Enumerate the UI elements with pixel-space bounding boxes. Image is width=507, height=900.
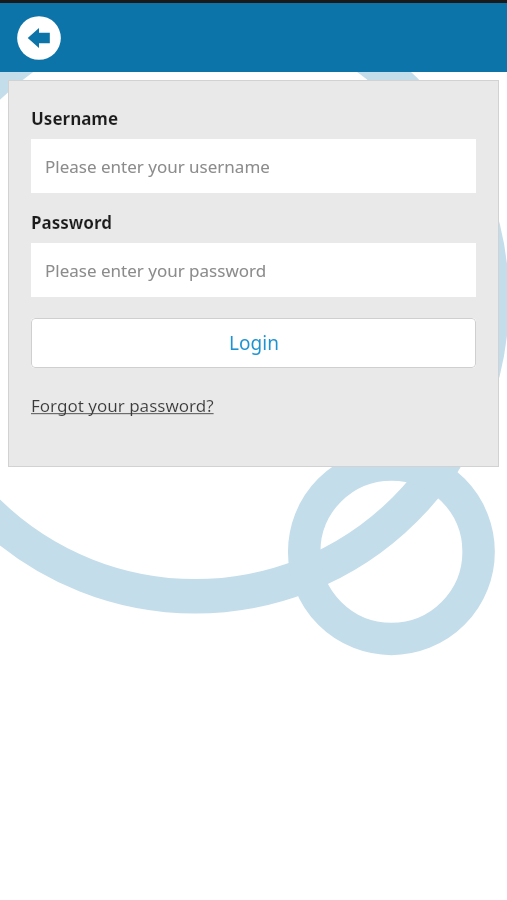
button[interactable]: Forgot your password? <box>31 394 214 417</box>
staticText: Password <box>31 211 112 234</box>
staticText: Login <box>229 330 279 356</box>
staticText: Forgot your password? <box>31 394 214 417</box>
staticText: Please enter your username <box>45 155 270 178</box>
staticText: Please enter your password <box>45 259 267 282</box>
button[interactable]: Login <box>31 318 476 368</box>
button[interactable]: Back <box>15 14 63 62</box>
button[interactable]: Please enter your password <box>31 243 476 297</box>
staticText: Username <box>31 107 119 130</box>
button[interactable]: Please enter your username <box>31 139 476 193</box>
